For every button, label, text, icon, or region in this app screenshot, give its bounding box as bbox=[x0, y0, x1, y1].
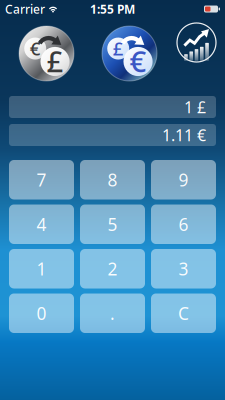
button[interactable]: Rates chart bbox=[177, 23, 216, 62]
staticText: 8 bbox=[107, 168, 117, 191]
button[interactable]: 2 bbox=[80, 249, 145, 288]
staticText: 1.11 € bbox=[162, 124, 206, 146]
button[interactable]: Euro to pound bbox=[19, 26, 74, 81]
staticText: Carrier bbox=[5, 1, 45, 17]
staticText: 1 bbox=[36, 257, 46, 280]
staticText: 4 bbox=[36, 213, 46, 236]
button[interactable]: 0 bbox=[9, 293, 74, 333]
button[interactable]: C bbox=[151, 293, 216, 333]
staticText: 1:55 PM bbox=[90, 1, 135, 17]
staticText: £ bbox=[46, 41, 63, 80]
button[interactable]: 9 bbox=[151, 160, 216, 199]
button[interactable]: Pound to euro bbox=[102, 26, 157, 81]
staticText: 0 bbox=[36, 302, 46, 325]
staticText: 1 £ bbox=[184, 96, 206, 118]
button[interactable]: 6 bbox=[151, 204, 216, 244]
button[interactable]: . bbox=[80, 293, 145, 333]
button[interactable]: 5 bbox=[80, 204, 145, 244]
button[interactable]: 3 bbox=[151, 249, 216, 288]
button[interactable]: 7 bbox=[9, 160, 74, 199]
staticText: . bbox=[110, 302, 115, 325]
staticText: € bbox=[30, 36, 41, 61]
staticText: 9 bbox=[178, 168, 188, 191]
staticText: 3 bbox=[178, 257, 188, 280]
staticText: C bbox=[178, 302, 189, 325]
staticText: £ bbox=[113, 36, 124, 61]
button[interactable]: 1 bbox=[9, 249, 74, 288]
staticText: 5 bbox=[107, 213, 117, 236]
button[interactable]: 8 bbox=[80, 160, 145, 199]
button[interactable]: 4 bbox=[9, 204, 74, 244]
staticText: 7 bbox=[36, 168, 46, 191]
staticText: € bbox=[129, 41, 146, 80]
staticText: 2 bbox=[107, 257, 117, 280]
staticText: 6 bbox=[178, 213, 188, 236]
